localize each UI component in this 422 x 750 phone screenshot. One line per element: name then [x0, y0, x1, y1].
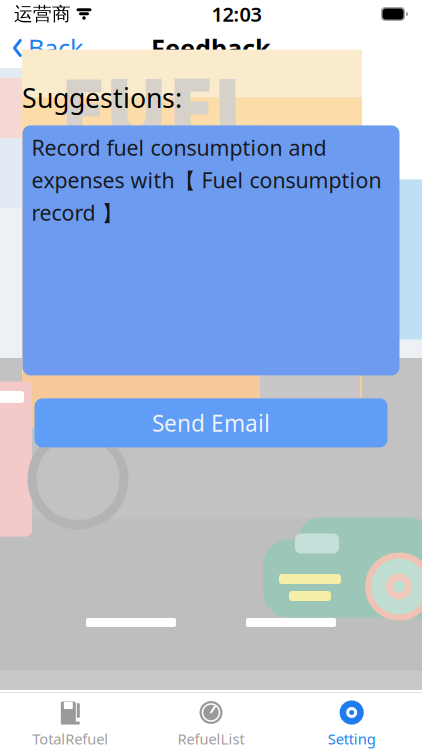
staticText: 12:03	[211, 1, 261, 27]
staticText: Setting	[328, 729, 376, 748]
button[interactable]: Send Email	[34, 398, 387, 447]
button[interactable]: Setting	[281, 700, 422, 748]
staticText: Record fuel consumption and expenses wit…	[31, 133, 381, 227]
staticText: FUEL	[60, 52, 261, 161]
staticText: Back	[28, 31, 84, 65]
staticText: TotalRefuel	[32, 729, 108, 748]
staticText: 运营商	[14, 2, 71, 25]
staticText: Suggestions:	[22, 80, 182, 115]
staticText: Feedback	[151, 31, 271, 65]
button[interactable]: Refuel List	[141, 700, 281, 748]
button[interactable]: Total Refuel	[0, 700, 141, 748]
staticText: Send Email	[152, 408, 270, 438]
staticText: RefuelList	[177, 729, 244, 748]
button[interactable]: Back	[0, 25, 96, 71]
